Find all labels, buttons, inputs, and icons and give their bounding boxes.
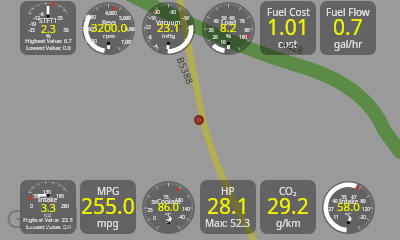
- staticText: -25: [28, 27, 35, 33]
- button[interactable]: 75: [142, 181, 195, 234]
- staticText: Lowest Value: 0.0: [26, 44, 71, 51]
- staticText: Max: 52.3: [205, 216, 251, 230]
- staticText: °C: [165, 211, 172, 219]
- staticText: 120: [362, 206, 370, 212]
- staticText: 30: [208, 27, 214, 33]
- staticText: -8: [147, 34, 152, 40]
- staticText: Intake: [38, 195, 58, 204]
- button[interactable]: -6: [20, 1, 76, 55]
- staticText: 86.0: [158, 200, 179, 214]
- staticText: psi: [44, 211, 52, 218]
- staticText: 0.7: [333, 13, 363, 42]
- staticText: 130: [43, 189, 51, 195]
- staticText: 90: [244, 27, 250, 33]
- staticText: CO₂: [279, 184, 297, 198]
- staticText: 23.1: [157, 20, 180, 36]
- staticText: -12: [186, 25, 193, 31]
- staticText: 8.2: [220, 20, 237, 36]
- staticText: Lowest Value: 0.0: [26, 223, 71, 230]
- button[interactable]: 3,000: [82, 2, 135, 55]
- button[interactable]: CO₂: [260, 180, 316, 234]
- staticText: 67: [351, 194, 357, 200]
- staticText: 3,000: [84, 14, 96, 20]
- staticText: 5,000: [119, 15, 131, 21]
- staticText: 40: [213, 18, 219, 24]
- staticText: 0: [30, 203, 33, 209]
- staticText: 140: [182, 206, 190, 212]
- staticText: -16: [149, 15, 156, 21]
- staticText: Intake: [339, 197, 359, 206]
- staticText: 20: [212, 34, 218, 40]
- staticText: -20: [153, 9, 160, 15]
- staticText: 3.3: [41, 201, 56, 215]
- button[interactable]: 50: [202, 2, 255, 55]
- staticText: 2.3: [41, 22, 56, 36]
- staticText: -20: [359, 214, 366, 220]
- staticText: 11: [333, 214, 339, 220]
- button[interactable]: 130: [20, 180, 76, 234]
- staticText: 25: [57, 15, 63, 21]
- staticText: -4: [184, 36, 189, 42]
- staticText: 110: [175, 197, 183, 203]
- staticText: rpm: [103, 32, 115, 40]
- staticText: Google: [6, 200, 94, 235]
- staticText: 58.0: [337, 199, 360, 215]
- staticText: 1,000: [85, 38, 97, 44]
- staticText: Highest Value: 22.5: [23, 216, 73, 223]
- staticText: -40: [178, 214, 185, 220]
- staticText: -12: [33, 15, 40, 21]
- staticText: 10: [220, 39, 226, 45]
- staticText: 0: [153, 215, 156, 221]
- staticText: gal/hr: [334, 37, 363, 51]
- staticText: 100: [239, 34, 247, 40]
- staticText: Fuel Flow: [326, 5, 370, 19]
- staticText: 5: [166, 218, 169, 224]
- staticText: -6: [39, 11, 44, 17]
- staticText: 7,000: [121, 39, 133, 45]
- button[interactable]: -20: [142, 2, 195, 55]
- staticText: -30: [169, 9, 176, 15]
- staticText: 80: [360, 198, 366, 204]
- staticText: 1.01: [267, 13, 309, 42]
- staticText: Coolant: [157, 197, 181, 206]
- staticText: 2,000: [82, 26, 94, 32]
- staticText: 25: [147, 207, 153, 213]
- button[interactable]: 55: [322, 181, 375, 234]
- staticText: 28.1: [207, 192, 249, 221]
- staticText: 55: [33, 193, 39, 199]
- button[interactable]: MPG: [80, 180, 136, 234]
- button[interactable]: Fuel Cost: [260, 1, 316, 55]
- staticText: Fuel Cost: [267, 5, 310, 19]
- staticText: -12: [144, 24, 151, 30]
- staticText: 50: [221, 15, 227, 21]
- staticText: Load: [221, 18, 236, 27]
- staticText: 195: [56, 193, 64, 199]
- staticText: 78: [239, 18, 245, 24]
- staticText: %: [46, 32, 51, 39]
- staticText: 75: [163, 194, 169, 200]
- staticText: 3200.0: [91, 20, 127, 36]
- staticText: inHg: [162, 32, 176, 40]
- staticText: 40: [332, 198, 338, 204]
- staticText: g/km: [276, 216, 301, 230]
- staticText: MPG: [97, 184, 120, 198]
- staticText: -19: [29, 21, 36, 27]
- button[interactable]: HP: [200, 180, 256, 234]
- staticText: 255.0: [81, 192, 135, 221]
- staticText: 260: [61, 203, 69, 209]
- staticText: cost: [278, 37, 298, 51]
- staticText: 27: [328, 206, 334, 212]
- staticText: °C: [345, 211, 352, 219]
- staticText: Highest Value: 6.7: [25, 37, 72, 44]
- staticText: Revs: [102, 18, 116, 27]
- staticText: Vacuum: [156, 18, 181, 27]
- staticText: STFT1: [39, 16, 57, 25]
- staticText: 60: [229, 15, 235, 21]
- staticText: 6,000: [125, 26, 135, 32]
- staticText: 55: [341, 194, 347, 200]
- staticText: -4: [153, 43, 158, 49]
- button[interactable]: Fuel Flow: [320, 1, 376, 55]
- staticText: -16: [182, 15, 189, 21]
- staticText: mpg: [97, 216, 119, 230]
- staticText: 29.2: [267, 192, 309, 221]
